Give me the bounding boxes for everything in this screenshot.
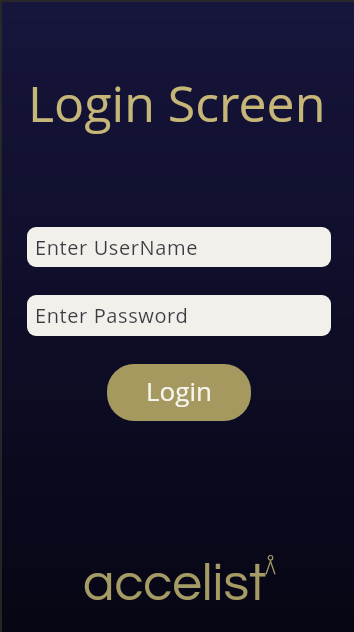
staticText: accelist <box>83 557 267 612</box>
staticText: Enter UserName <box>35 234 198 261</box>
button[interactable]: Enter UserName <box>27 227 331 267</box>
staticText: Login <box>146 373 212 408</box>
staticText: Login Screen <box>28 69 326 137</box>
button[interactable]: Enter Password <box>27 295 331 336</box>
button[interactable]: Login <box>107 364 251 421</box>
staticText: Enter Password <box>35 302 189 329</box>
